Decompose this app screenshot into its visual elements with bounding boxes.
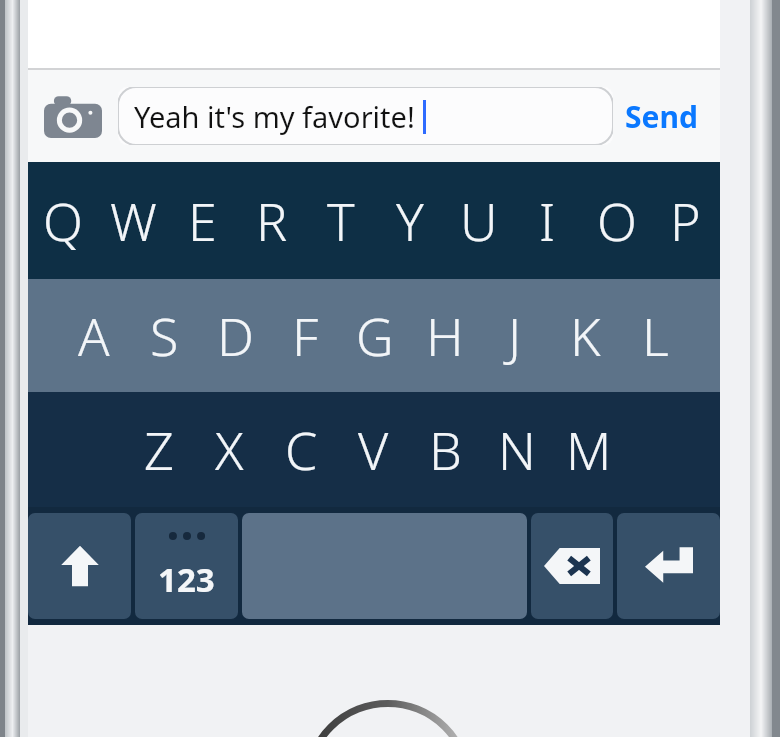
button[interactable]: Yeah it's my favorite! bbox=[118, 87, 613, 145]
button[interactable]: Send bbox=[625, 96, 698, 137]
staticText: O bbox=[597, 185, 637, 256]
button[interactable]: Enter bbox=[617, 513, 720, 619]
button[interactable]: P bbox=[651, 162, 720, 279]
staticText: A bbox=[78, 300, 110, 371]
staticText: N bbox=[498, 414, 536, 485]
staticText: F bbox=[292, 300, 319, 371]
button[interactable]: W bbox=[98, 162, 168, 279]
button[interactable]: Attach photo bbox=[38, 81, 108, 151]
button[interactable]: L bbox=[620, 279, 690, 392]
staticText: 123 bbox=[158, 557, 215, 602]
staticText: Send bbox=[625, 96, 698, 137]
button[interactable]: B bbox=[409, 392, 481, 507]
staticText: W bbox=[110, 185, 157, 256]
button[interactable]: U bbox=[444, 162, 513, 279]
button[interactable]: E bbox=[168, 162, 237, 279]
staticText: Q bbox=[43, 185, 83, 256]
button[interactable]: H bbox=[410, 279, 480, 392]
staticText: X bbox=[215, 414, 244, 485]
button[interactable]: G bbox=[340, 279, 410, 392]
button[interactable]: J bbox=[480, 279, 550, 392]
button[interactable]: I bbox=[513, 162, 582, 279]
button[interactable]: Shift bbox=[28, 513, 131, 619]
button[interactable]: C bbox=[265, 392, 337, 507]
button[interactable]: Backspace bbox=[531, 513, 613, 619]
staticText: K bbox=[570, 300, 601, 371]
button[interactable]: Z bbox=[123, 392, 194, 507]
button[interactable]: N bbox=[481, 392, 553, 507]
button[interactable]: Numbers bbox=[135, 513, 238, 619]
staticText: Y bbox=[396, 185, 424, 256]
button[interactable]: Q bbox=[28, 162, 98, 279]
staticText: T bbox=[327, 185, 355, 256]
button[interactable]: T bbox=[306, 162, 375, 279]
button[interactable]: F bbox=[270, 279, 340, 392]
button[interactable]: V bbox=[337, 392, 409, 507]
staticText: L bbox=[642, 300, 669, 371]
staticText: I bbox=[539, 185, 556, 256]
staticText: R bbox=[256, 185, 288, 256]
button[interactable]: O bbox=[582, 162, 651, 279]
staticText: M bbox=[566, 414, 612, 485]
button[interactable]: M bbox=[553, 392, 625, 507]
staticText: C bbox=[285, 414, 318, 485]
button[interactable]: K bbox=[550, 279, 620, 392]
button[interactable]: D bbox=[200, 279, 270, 392]
staticText: D bbox=[217, 300, 254, 371]
staticText: P bbox=[670, 185, 701, 256]
staticText: E bbox=[188, 185, 217, 256]
staticText: S bbox=[150, 300, 179, 371]
staticText: J bbox=[508, 300, 522, 371]
button[interactable]: Y bbox=[375, 162, 444, 279]
staticText: V bbox=[358, 414, 389, 485]
staticText: H bbox=[426, 300, 464, 371]
button[interactable]: X bbox=[194, 392, 265, 507]
staticText: Z bbox=[144, 414, 174, 485]
staticText: Yeah it's my favorite! bbox=[134, 97, 415, 136]
button[interactable]: A bbox=[58, 279, 129, 392]
staticText: B bbox=[429, 414, 462, 485]
button[interactable]: R bbox=[237, 162, 306, 279]
staticText: G bbox=[356, 300, 394, 371]
button[interactable]: S bbox=[129, 279, 200, 392]
staticText: U bbox=[460, 185, 498, 256]
